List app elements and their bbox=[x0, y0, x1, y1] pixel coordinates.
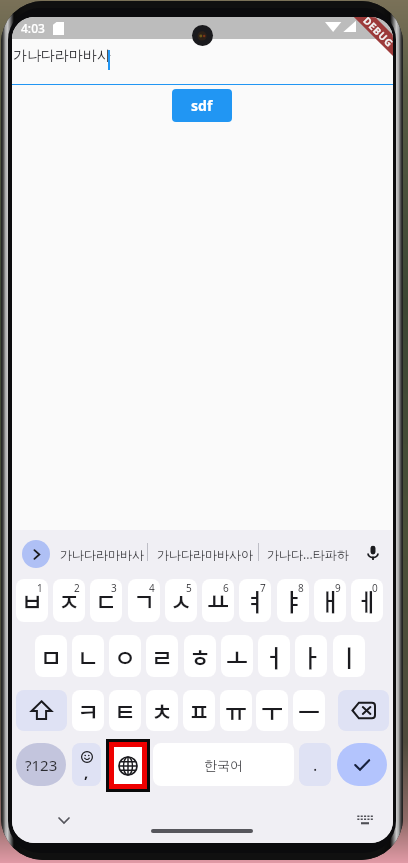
button[interactable]: . bbox=[299, 743, 331, 786]
button[interactable]: ㅛ bbox=[202, 579, 234, 622]
button[interactable]: ㅌ bbox=[109, 690, 141, 731]
staticText: . bbox=[313, 754, 318, 776]
button[interactable]: ㅅ bbox=[165, 579, 197, 622]
staticText: 한국어 bbox=[204, 757, 243, 773]
staticText: 9 bbox=[335, 581, 341, 595]
staticText: ㅊ bbox=[151, 693, 174, 728]
staticText: 6 bbox=[223, 581, 229, 595]
button[interactable]: ㅜ bbox=[256, 690, 288, 731]
staticText: ㄷ bbox=[95, 583, 118, 618]
staticText: ㅎ bbox=[189, 639, 212, 674]
staticText: 1 bbox=[37, 581, 43, 595]
button[interactable]: ㅓ bbox=[258, 635, 290, 677]
button[interactable]: Emoji bbox=[72, 743, 101, 786]
button[interactable]: ㅐ bbox=[314, 579, 346, 622]
button[interactable]: ㄷ bbox=[90, 579, 122, 622]
button[interactable]: ㅏ bbox=[295, 635, 327, 677]
staticText: ㄴ bbox=[77, 639, 100, 674]
staticText: 8 bbox=[298, 581, 304, 595]
staticText: ㅕ bbox=[244, 583, 267, 618]
staticText: ㅈ bbox=[58, 583, 81, 618]
staticText: ㅁ bbox=[40, 639, 63, 674]
button[interactable]: 가나다...타파하 bbox=[261, 536, 355, 572]
staticText: ㅇ bbox=[114, 639, 137, 674]
button[interactable]: Shift bbox=[16, 690, 67, 731]
staticText: 가나다...타파하 bbox=[267, 546, 349, 562]
button[interactable]: Change keyboard bbox=[350, 805, 380, 835]
button[interactable]: ㅈ bbox=[53, 579, 85, 622]
button[interactable]: ㅎ bbox=[184, 635, 216, 677]
button[interactable]: ㅍ bbox=[183, 690, 215, 731]
button[interactable]: Enter bbox=[337, 743, 387, 786]
staticText: ㅌ bbox=[114, 693, 137, 728]
button[interactable]: ㅠ bbox=[220, 690, 252, 731]
staticText: 4 bbox=[149, 581, 155, 595]
staticText: ㅡ bbox=[298, 693, 321, 728]
button[interactable]: ㅗ bbox=[221, 635, 253, 677]
staticText: ㅋ bbox=[77, 693, 100, 728]
button[interactable]: Backspace bbox=[338, 690, 389, 731]
staticText: 7 bbox=[260, 581, 266, 595]
staticText: ㅔ bbox=[356, 583, 379, 618]
staticText: 2 bbox=[74, 581, 80, 595]
staticText: ㅅ bbox=[170, 583, 193, 618]
staticText: 가나다라마바사아 bbox=[157, 547, 253, 562]
staticText: DEBUG bbox=[360, 17, 393, 50]
staticText: ㅛ bbox=[207, 583, 230, 618]
button[interactable]: ㅇ bbox=[109, 635, 141, 677]
button[interactable]: 한국어 bbox=[153, 743, 294, 786]
staticText: ㅐ bbox=[319, 583, 342, 618]
staticText: ㅑ bbox=[282, 583, 305, 618]
staticText: ㅣ bbox=[338, 639, 361, 674]
button[interactable]: ㄴ bbox=[72, 635, 104, 677]
staticText: 5 bbox=[186, 581, 192, 595]
button[interactable]: sdf bbox=[172, 89, 232, 122]
button[interactable]: ㅕ bbox=[239, 579, 271, 622]
button[interactable]: Expand suggestions bbox=[22, 540, 50, 568]
button[interactable]: ㄱ bbox=[128, 579, 160, 622]
button[interactable]: Hide keyboard bbox=[49, 806, 78, 835]
staticText: ㅏ bbox=[300, 639, 323, 674]
staticText: ㅜ bbox=[261, 693, 284, 728]
staticText: 3 bbox=[111, 581, 117, 595]
staticText: 0 bbox=[372, 581, 378, 595]
staticText: 4:03 bbox=[21, 20, 45, 36]
staticText: ㄹ bbox=[151, 639, 174, 674]
button[interactable]: Voice input bbox=[357, 536, 389, 572]
staticText: 가나다라마바사 bbox=[13, 47, 111, 65]
button[interactable]: 가나다라마바사아 bbox=[151, 536, 258, 572]
button[interactable]: 가나다라마바사 bbox=[56, 536, 148, 572]
staticText: ㅗ bbox=[226, 639, 249, 674]
staticText: , bbox=[84, 762, 89, 782]
staticText: 가나다라마바사 bbox=[60, 547, 144, 562]
staticText: ㅍ bbox=[188, 693, 211, 728]
button[interactable]: ?123 bbox=[16, 743, 66, 786]
staticText: ㅠ bbox=[225, 693, 248, 728]
button[interactable]: ㅑ bbox=[277, 579, 309, 622]
button[interactable]: ㅂ bbox=[16, 579, 48, 622]
staticText: ?123 bbox=[25, 755, 58, 775]
staticText: ㄱ bbox=[133, 583, 156, 618]
button[interactable]: ㄹ bbox=[146, 635, 178, 677]
button[interactable]: ㅋ bbox=[72, 690, 104, 731]
button[interactable]: ㅔ bbox=[351, 579, 383, 622]
staticText: ㅂ bbox=[21, 583, 44, 618]
button[interactable]: ㅣ bbox=[333, 635, 365, 677]
button[interactable]: ㅡ bbox=[293, 690, 325, 731]
button[interactable]: Switch language bbox=[114, 747, 142, 784]
staticText: ㅓ bbox=[263, 639, 286, 674]
staticText: sdf bbox=[191, 96, 213, 115]
button[interactable]: ㅊ bbox=[146, 690, 178, 731]
button[interactable]: ㅁ bbox=[35, 635, 67, 677]
